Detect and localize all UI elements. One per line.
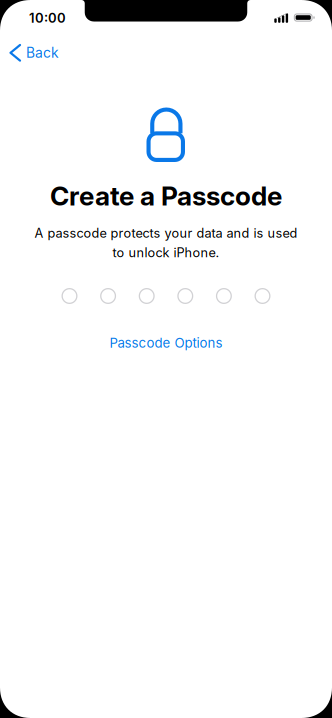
button[interactable]: Back [0,35,104,71]
staticText: 10:00 [29,10,66,26]
staticText: to unlock iPhone. [112,245,219,260]
staticText: A passcode protects your data and is use… [34,225,297,241]
staticText: Create a Passcode [50,180,282,212]
staticText: Back [26,44,59,61]
button[interactable]: Passcode Options [91,331,241,355]
staticText: Passcode Options [109,335,222,351]
